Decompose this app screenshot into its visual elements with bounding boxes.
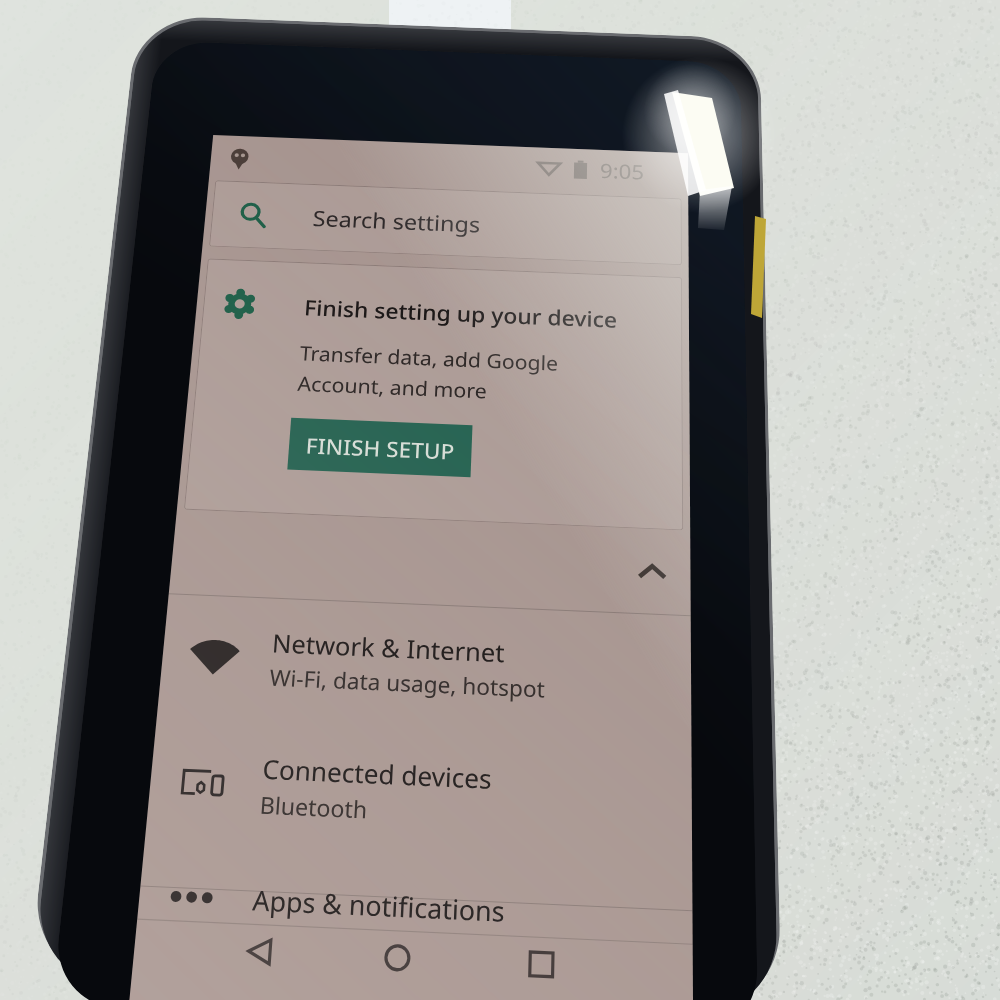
button[interactable]: Network & Internet [158,601,691,731]
staticText: FINISH SETUP [305,430,455,465]
staticText: Network & Internet [271,625,505,669]
staticText: Finish setting up your device [303,292,617,334]
button[interactable]: FINISH SETUP [287,418,472,477]
staticText: Bluetooth [259,788,369,825]
button[interactable]: Recent apps [493,936,588,992]
button[interactable]: Connected devices [146,730,692,855]
staticText: Connected devices [261,750,493,796]
button[interactable]: Search settings [209,180,682,265]
button[interactable]: Back [210,923,307,979]
button[interactable]: Collapse suggestions [629,548,675,595]
staticText: Search settings [312,203,482,238]
staticText: Apps & notifications [251,881,506,930]
staticText: Transfer data, add Google [299,339,559,376]
staticText: Wi-Fi, data usage, hotspot [268,661,546,704]
staticText: Account, and more [297,369,488,404]
staticText: 9:05 [600,156,644,185]
button[interactable]: Home [349,929,444,985]
button[interactable]: Apps & notifications [137,866,693,948]
